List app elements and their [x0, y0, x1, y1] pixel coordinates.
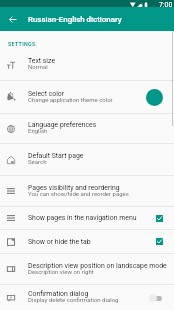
button[interactable]: Default Start page — [0, 144, 174, 175]
staticText: Search — [28, 158, 47, 165]
staticText: Confirmation dialog — [28, 290, 89, 298]
staticText: Language preferences — [28, 121, 97, 129]
staticText: 7:00 — [159, 1, 173, 8]
staticText: Russian-English dictionary — [28, 15, 122, 24]
button[interactable]: Language preferences — [0, 114, 174, 143]
staticText: English — [28, 127, 48, 134]
staticText: Description view position on landscape m… — [28, 262, 167, 270]
staticText: Normal — [28, 63, 48, 70]
button[interactable]: Select color — [0, 81, 174, 113]
staticText: Default Start page — [28, 152, 84, 160]
button[interactable]: Back — [3, 7, 22, 31]
button[interactable]: Description view position on landscape m… — [0, 254, 174, 284]
staticText: Display delete confirmation dialog — [28, 296, 119, 303]
staticText: You can show/hide and reorder pages — [28, 190, 129, 197]
staticText: Text size — [28, 57, 56, 65]
button[interactable]: Text size — [0, 49, 174, 80]
button[interactable]: Confirmation dialog — [0, 285, 174, 310]
button[interactable]: Show pages in the navigation menu — [0, 207, 174, 229]
staticText: Pages visibility and reordering — [28, 184, 120, 192]
button[interactable]: Pages visibility and reordering — [0, 176, 174, 206]
button[interactable]: Show or hide the tab — [0, 230, 174, 253]
staticText: Change application theme color — [28, 96, 113, 103]
staticText: Description view on right — [28, 268, 94, 275]
staticText: SETTINGS — [8, 41, 36, 47]
staticText: Show pages in the navigation menu — [28, 214, 137, 222]
staticText: Show or hide the tab — [28, 238, 91, 246]
staticText: Select color — [28, 90, 65, 98]
